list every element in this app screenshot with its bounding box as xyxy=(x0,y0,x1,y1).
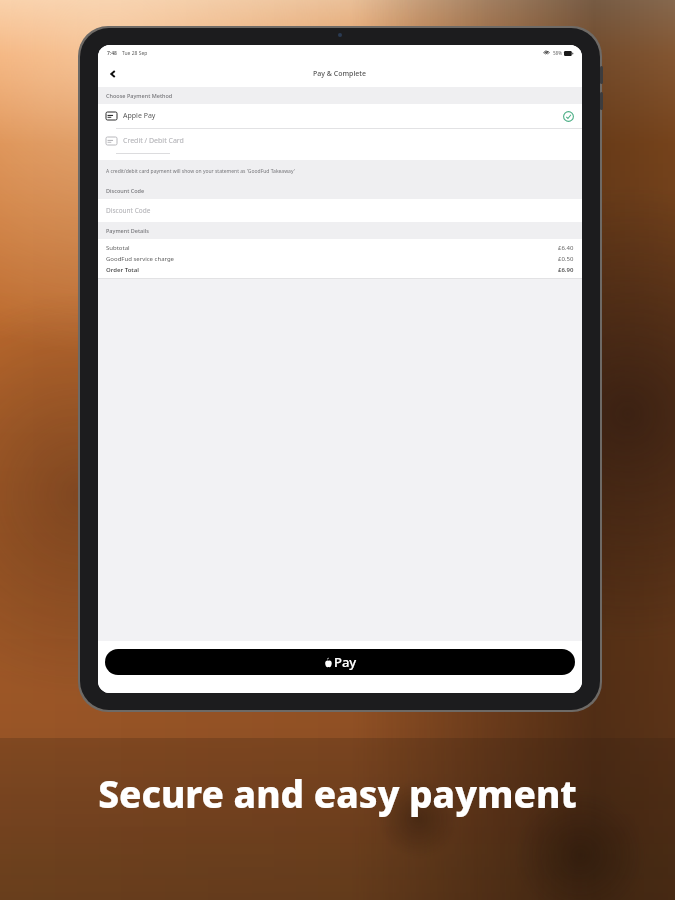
staticText: Secure and easy payment xyxy=(98,768,577,818)
staticText: £6.90 xyxy=(558,266,574,274)
button[interactable]: Back xyxy=(102,63,124,85)
button[interactable]: Credit / Debit Card xyxy=(98,129,582,153)
staticText: Apple Pay xyxy=(123,111,156,121)
staticText: Discount Code xyxy=(106,206,151,215)
staticText: Choose Payment Method xyxy=(106,92,173,99)
staticText: Subtotal xyxy=(106,244,130,252)
staticText: £6.40 xyxy=(558,244,574,252)
staticText: Order Total xyxy=(106,266,139,274)
staticText: 58% xyxy=(553,50,562,56)
staticText: Tue 28 Sep xyxy=(122,50,148,57)
button[interactable]: Discount Code xyxy=(98,199,582,222)
staticText: 7:48 xyxy=(107,50,117,57)
button[interactable]: Pay with Apple Pay xyxy=(105,649,575,675)
staticText: Discount Code xyxy=(106,187,145,194)
staticText: Pay xyxy=(334,653,357,671)
staticText: Credit / Debit Card xyxy=(123,136,184,146)
staticText: Pay & Complete xyxy=(313,69,367,79)
button[interactable]: Apple Pay xyxy=(98,104,582,128)
staticText: A credit/debit card payment will show on… xyxy=(106,168,295,175)
staticText: £0.50 xyxy=(558,255,574,263)
staticText: Payment Details xyxy=(106,227,149,234)
staticText: GoodFud service charge xyxy=(106,255,174,263)
